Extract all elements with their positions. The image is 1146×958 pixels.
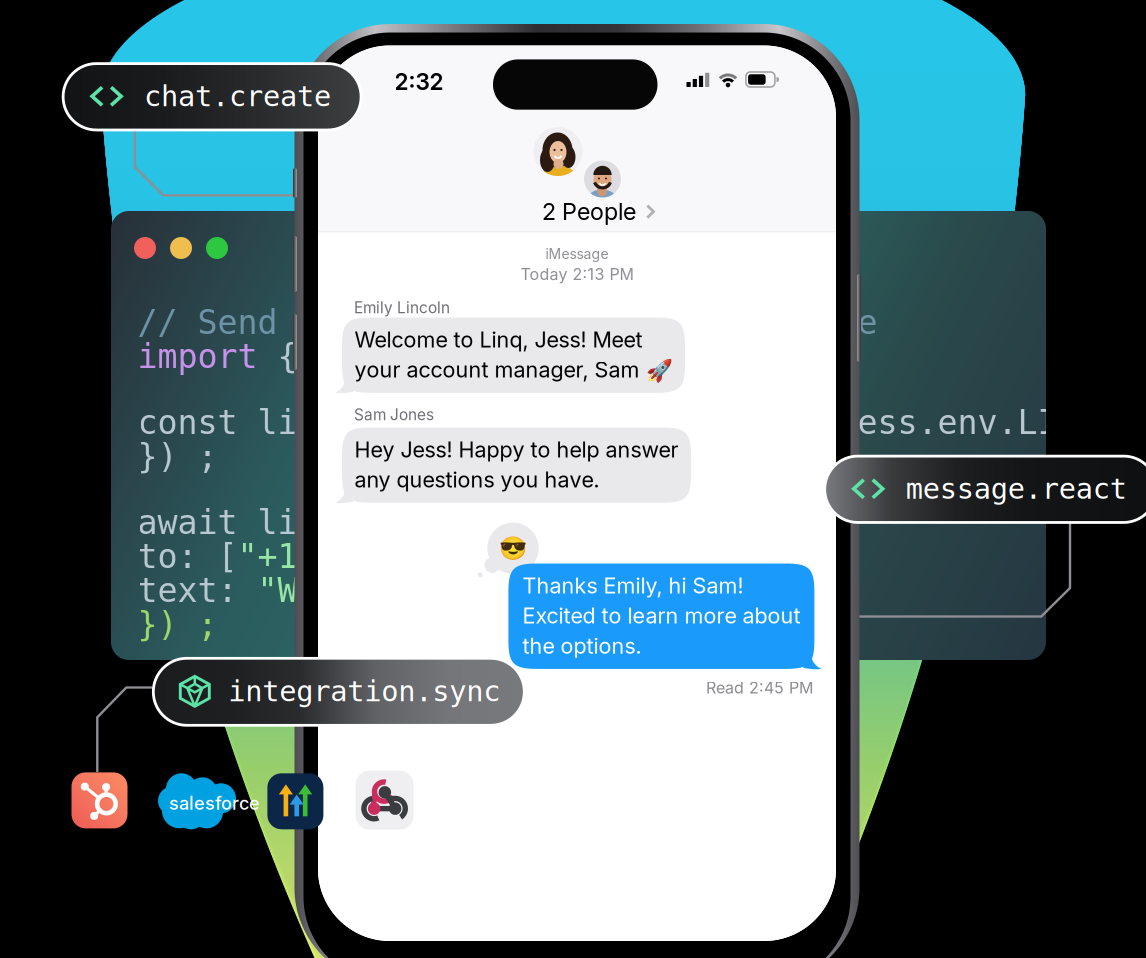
staticText: { Linq } bbox=[277, 337, 457, 376]
button[interactable]: Analytics integration bbox=[267, 773, 323, 829]
staticText: Sam Jones bbox=[354, 405, 434, 424]
staticText: Today 2:13 PM bbox=[520, 264, 633, 284]
staticText: Thanks Emily, hi Sam! bbox=[522, 572, 743, 599]
staticText: Welcome to Linq, Jess! Meet bbox=[354, 326, 642, 353]
staticText: 2 People bbox=[542, 197, 636, 226]
staticText: }) ; bbox=[137, 605, 217, 644]
staticText: await linq.messages.send({ bbox=[137, 503, 657, 542]
staticText: your account manager, Sam 🚀 bbox=[354, 357, 672, 383]
staticText: new bbox=[397, 403, 477, 442]
staticText: const linq = bbox=[137, 403, 397, 442]
staticText: "+14155550147" bbox=[237, 537, 517, 576]
staticText: ], bbox=[517, 537, 557, 576]
staticText: chat.create bbox=[144, 80, 331, 113]
staticText: salesforce bbox=[169, 792, 260, 814]
staticText: 2:32 bbox=[394, 68, 443, 95]
staticText: any questions you have. bbox=[354, 467, 599, 493]
staticText: Emily Lincoln bbox=[354, 298, 450, 317]
staticText: integration.sync bbox=[228, 675, 500, 708]
staticText: }) ; bbox=[137, 437, 217, 476]
staticText: , bbox=[737, 571, 757, 610]
staticText: Hey Jess! Happy to help answer bbox=[354, 436, 678, 463]
staticText: "Welcome to Linq, Jess!" bbox=[257, 571, 737, 610]
staticText: message.react bbox=[906, 472, 1127, 505]
button[interactable]: chat.create bbox=[63, 64, 361, 130]
staticText: "@linq/sdk" bbox=[557, 337, 777, 376]
staticText: to: [ bbox=[137, 537, 237, 576]
staticText: iMessage bbox=[545, 245, 608, 262]
button[interactable]: Webhooks integration bbox=[356, 771, 414, 830]
button[interactable]: message.react bbox=[825, 456, 1146, 522]
button[interactable]: 2 People bbox=[318, 45, 836, 231]
staticText: 😎 bbox=[499, 535, 527, 561]
staticText: Read 2:45 PM bbox=[706, 678, 813, 697]
staticText: Linq({ apiKey: process.env.LINQ_API_KEY bbox=[477, 403, 1146, 442]
button[interactable]: integration.sync bbox=[153, 658, 524, 725]
staticText: // Send an SMS in three lines of code bbox=[137, 303, 877, 342]
button[interactable]: Salesforce integration bbox=[158, 773, 236, 828]
staticText: the options. bbox=[522, 633, 641, 659]
button[interactable]: HubSpot integration bbox=[71, 772, 127, 828]
staticText: text: bbox=[137, 571, 257, 610]
staticText: import bbox=[137, 337, 277, 376]
staticText: from bbox=[457, 337, 557, 376]
staticText: Excited to learn more about bbox=[522, 603, 800, 629]
